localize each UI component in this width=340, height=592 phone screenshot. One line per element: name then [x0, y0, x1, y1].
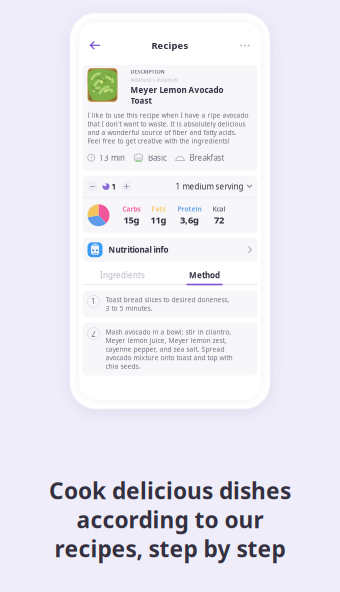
staticText: 11g [150, 214, 166, 226]
staticText: Toast bread slices to desired doneness, [105, 295, 229, 304]
staticText: 1 [109, 181, 116, 192]
staticText: 72 [214, 214, 224, 226]
staticText: 3,6g [180, 214, 199, 226]
button[interactable]: Nutritional info [82, 238, 257, 262]
staticText: Toast [130, 95, 151, 106]
staticText: and a wonderful source of fiber and fatt… [87, 128, 236, 137]
staticText: Basic [144, 152, 167, 163]
staticText: I like to use this recipe when I have a … [87, 111, 248, 120]
staticText: that I don't want to waste. It is absolu… [87, 119, 245, 128]
staticText: Cook delicious dishes [49, 475, 291, 505]
staticText: chia seeds. [105, 362, 140, 371]
staticText: 1 [91, 296, 96, 307]
staticText: Feel free to get creative with the ingre… [87, 137, 229, 145]
staticText: cayenne pepper, and sea salt. Spread [105, 345, 224, 353]
staticText: according to our [76, 504, 263, 534]
staticText: Kcal [212, 204, 225, 213]
staticText: Meyer lemon juice, Meyer lemon zest, [105, 336, 226, 345]
button[interactable]: 1 medium serving [175, 181, 252, 192]
button[interactable]: Method [174, 267, 234, 284]
staticText: Recipes [151, 39, 188, 52]
staticText: Protein [177, 204, 201, 213]
staticText: Mash avocado in a bowl; stir in cilantro… [105, 327, 231, 336]
staticText: Fats [151, 204, 165, 213]
button[interactable]: Ingredients [82, 267, 162, 284]
staticText: 1 medium serving [175, 181, 243, 192]
staticText: avocado mixture onto toast and top with [105, 353, 232, 362]
staticText: Ingredients [100, 270, 145, 280]
staticText: 15g [123, 214, 139, 226]
button[interactable]: Increase servings [121, 181, 131, 191]
staticText: #diabetics #utensils [130, 76, 178, 83]
button[interactable]: Decrease servings [87, 181, 97, 191]
staticText: 13 min [95, 152, 125, 163]
staticText: Carbs [122, 204, 140, 213]
staticText: Nutritional info [108, 244, 168, 255]
button[interactable]: Back [83, 34, 107, 56]
staticText: Meyer Lemon Avocado [130, 85, 223, 95]
staticText: Breakfast [185, 152, 224, 163]
button[interactable]: More options [233, 34, 257, 56]
staticText: Method [189, 270, 220, 280]
staticText: 2 [91, 328, 96, 339]
staticText: 3 to 5 minutes. [105, 304, 152, 313]
staticText: recipes, step by step [54, 533, 285, 563]
staticText: DESCRIPTION [130, 68, 164, 75]
